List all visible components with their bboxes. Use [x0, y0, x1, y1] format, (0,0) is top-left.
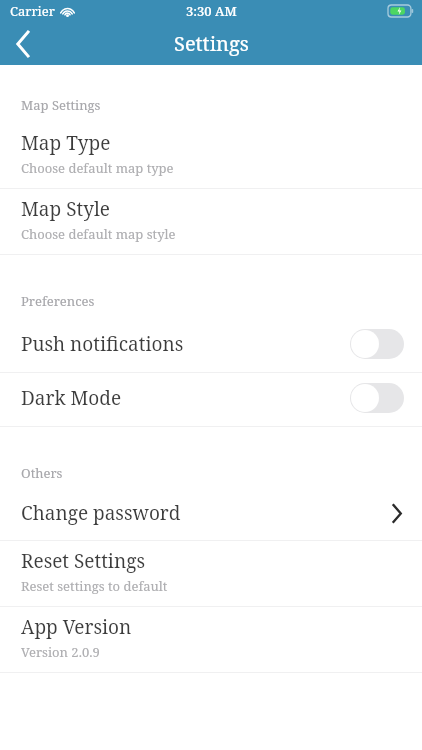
- staticText: Change password: [21, 500, 392, 526]
- button[interactable]: Dark Mode: [0, 373, 422, 426]
- staticText: Map Style: [21, 196, 110, 222]
- button[interactable]: Push notifications: [0, 319, 422, 372]
- staticText: Settings: [174, 30, 249, 57]
- button[interactable]: Map Type: [0, 123, 422, 188]
- staticText: 3:30 AM: [186, 2, 237, 20]
- button[interactable]: Back: [0, 22, 46, 65]
- staticText: Map Type: [21, 130, 111, 156]
- button[interactable]: Reset Settings: [0, 541, 422, 606]
- staticText: Version 2.0.9: [21, 643, 100, 661]
- staticText: Dark Mode: [21, 385, 350, 411]
- staticText: Push notifications: [21, 331, 350, 357]
- staticText: Reset settings to default: [21, 577, 168, 595]
- button[interactable]: Change password: [0, 491, 422, 540]
- staticText: Choose default map style: [21, 225, 176, 243]
- staticText: Others: [21, 464, 63, 482]
- button[interactable]: App Version: [0, 607, 422, 672]
- staticText: Carrier: [10, 2, 55, 20]
- staticText: Map Settings: [21, 96, 101, 114]
- staticText: Reset Settings: [21, 548, 145, 574]
- staticText: Preferences: [21, 292, 95, 310]
- staticText: App Version: [21, 614, 132, 640]
- staticText: Choose default map type: [21, 159, 174, 177]
- button[interactable]: Map Style: [0, 189, 422, 254]
